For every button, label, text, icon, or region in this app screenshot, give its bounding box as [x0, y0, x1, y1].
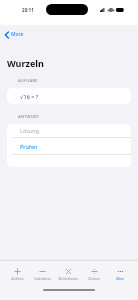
button[interactable]: Subtraktion — [30, 264, 55, 284]
staticText: Addition — [11, 277, 24, 281]
button[interactable]: Prüfen — [7, 138, 131, 154]
button[interactable]: √16 = ? — [7, 88, 131, 104]
staticText: ANTWORT — [18, 114, 40, 120]
staticText: Lösung — [20, 127, 40, 134]
staticText: 20:11 — [22, 7, 34, 13]
button[interactable]: Division — [81, 264, 107, 284]
staticText: √16 = ? — [20, 93, 39, 100]
staticText: Prüfen — [20, 143, 38, 150]
button[interactable]: Addition — [5, 264, 30, 284]
button[interactable]: Lösung — [7, 124, 131, 137]
button[interactable]: Multiplikation — [55, 264, 81, 284]
staticText: More — [11, 31, 24, 38]
staticText: Subtraktion — [34, 277, 51, 281]
staticText: Wurzeln — [7, 57, 44, 69]
staticText: More — [116, 277, 124, 281]
staticText: Multiplikation — [58, 277, 79, 281]
button[interactable]: More — [107, 264, 133, 284]
button[interactable]: More — [4, 30, 25, 39]
staticText: AUFGABE — [18, 78, 38, 84]
staticText: Division — [88, 277, 100, 281]
